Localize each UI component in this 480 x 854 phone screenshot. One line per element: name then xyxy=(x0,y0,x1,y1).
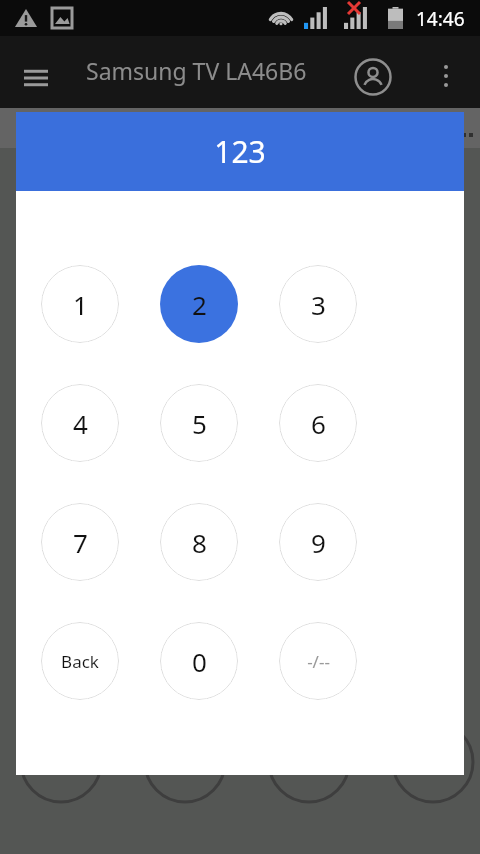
staticText: 3 xyxy=(311,287,326,322)
staticText: 14:46 xyxy=(416,6,465,32)
button[interactable]: More options xyxy=(424,54,468,98)
staticText: 0 xyxy=(192,644,207,679)
staticText: Samsung TV LA46B6 xyxy=(86,55,307,86)
staticText: 9 xyxy=(311,525,326,560)
staticText: 5 xyxy=(192,406,207,441)
staticText: 123 xyxy=(214,131,266,172)
button[interactable]: 1 xyxy=(41,265,119,343)
staticText: 7 xyxy=(73,525,88,560)
button[interactable]: 2 xyxy=(160,265,238,343)
button[interactable]: 9 xyxy=(279,503,357,581)
staticText: 1 xyxy=(73,287,88,322)
button[interactable]: 3 xyxy=(279,265,357,343)
button[interactable]: -/-- xyxy=(279,622,357,700)
button[interactable]: 0 xyxy=(160,622,238,700)
button[interactable]: 8 xyxy=(160,503,238,581)
button[interactable]: 6 xyxy=(279,384,357,462)
button[interactable]: Account xyxy=(350,54,396,100)
button[interactable]: 7 xyxy=(41,503,119,581)
button[interactable]: 5 xyxy=(160,384,238,462)
staticText: 8 xyxy=(192,525,207,560)
staticText: 6 xyxy=(311,406,326,441)
staticText: Back xyxy=(61,650,99,673)
button[interactable]: Back xyxy=(41,622,119,700)
staticText: -/-- xyxy=(307,650,330,673)
button[interactable]: 4 xyxy=(41,384,119,462)
staticText: 4 xyxy=(73,406,88,441)
staticText: 2 xyxy=(192,287,207,322)
button[interactable]: Open navigation drawer xyxy=(12,54,60,102)
